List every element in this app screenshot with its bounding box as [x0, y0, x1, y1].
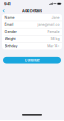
staticText: Mar 14 [47, 44, 57, 48]
staticText: 9:41 [4, 1, 11, 6]
staticText: Gender [5, 30, 17, 34]
staticText: Name [5, 15, 15, 19]
staticText: Weight [5, 37, 16, 41]
button[interactable]: Gender [2, 28, 62, 35]
staticText: Add Details [22, 8, 42, 13]
button[interactable]: Birthday [2, 43, 62, 49]
staticText: Email [5, 22, 14, 27]
staticText: jane@mail.co [37, 22, 59, 27]
staticText: Female [47, 30, 59, 34]
staticText: Jane [51, 15, 59, 19]
button[interactable]: Email [2, 21, 62, 28]
staticText: 58 kg [50, 37, 59, 41]
staticText: Birthday [5, 44, 18, 48]
button[interactable]: Weight [2, 35, 62, 42]
button[interactable]: Back [0, 8, 7, 14]
button[interactable]: Name [2, 14, 62, 21]
button[interactable]: Continue [3, 57, 61, 63]
staticText: Continue [24, 58, 39, 62]
